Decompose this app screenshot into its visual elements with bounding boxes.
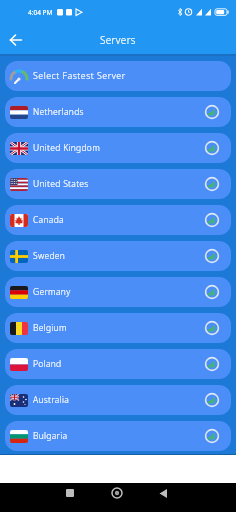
button[interactable]: Belgium [5, 313, 231, 343]
button[interactable] [62, 485, 78, 501]
button[interactable] [6, 30, 26, 50]
staticText: Servers [100, 33, 136, 47]
button[interactable] [155, 485, 171, 501]
button[interactable]: Bulgaria [5, 421, 231, 451]
staticText: Germany [33, 286, 71, 298]
staticText: United Kingdom [33, 142, 101, 154]
staticText: 4:04 PM [28, 8, 53, 17]
button[interactable]: United States [5, 169, 231, 199]
staticText: Netherlands [33, 106, 84, 118]
button[interactable]: Sweden [5, 241, 231, 271]
button[interactable] [109, 485, 125, 501]
staticText: Sweden [33, 250, 66, 262]
button[interactable]: Germany [5, 277, 231, 307]
button[interactable]: Poland [5, 349, 231, 379]
button[interactable]: Canada [5, 205, 231, 235]
staticText: Poland [33, 358, 62, 370]
staticText: Belgium [33, 322, 67, 334]
staticText: Canada [33, 214, 64, 226]
button[interactable]: Netherlands [5, 97, 231, 127]
button[interactable]: United Kingdom [5, 133, 231, 163]
button[interactable]: Australia [5, 385, 231, 415]
staticText: Select Fastest Server [33, 70, 126, 82]
button[interactable]: Select Fastest Server [5, 61, 231, 91]
staticText: United States [33, 178, 89, 190]
staticText: Bulgaria [33, 430, 68, 442]
staticText: Australia [33, 394, 70, 406]
